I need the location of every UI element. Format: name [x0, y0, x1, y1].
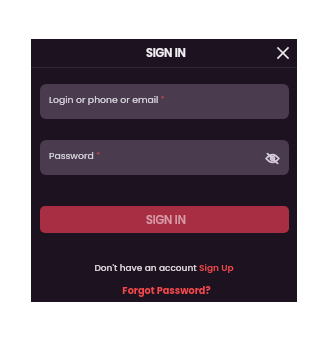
staticText: Login or phone or email * [49, 93, 165, 106]
button[interactable]: Forgot Password? [122, 284, 211, 298]
staticText: Password * [49, 149, 100, 162]
button[interactable]: Show password [263, 149, 281, 167]
button[interactable]: SIGN IN [40, 206, 289, 233]
button[interactable]: Password * [40, 140, 289, 175]
button[interactable]: Don't have an account Sign Up [94, 262, 234, 275]
button[interactable]: Login or phone or email * [40, 84, 289, 119]
button[interactable]: SIGN IN [31, 40, 297, 66]
button[interactable]: Close [272, 42, 294, 64]
staticText: SIGN IN [146, 45, 186, 61]
staticText: SIGN IN [146, 212, 186, 228]
